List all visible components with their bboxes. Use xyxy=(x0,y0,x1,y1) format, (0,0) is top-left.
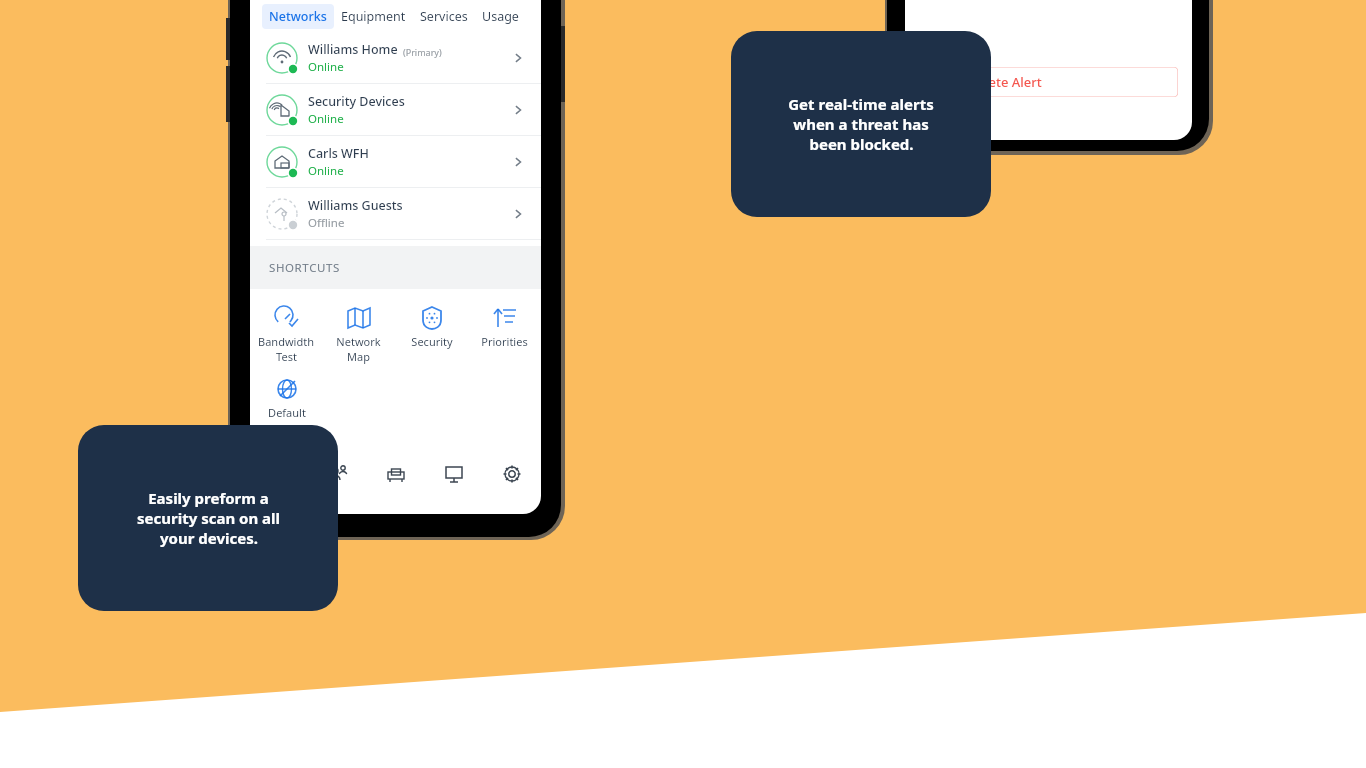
button[interactable]: Network xyxy=(322,303,395,366)
button[interactable]: Services xyxy=(413,4,475,29)
button[interactable]: Easily preform a xyxy=(78,425,338,611)
staticText: (Primary) xyxy=(403,46,442,58)
staticText: Security xyxy=(411,334,453,349)
staticText: Networks xyxy=(269,8,327,25)
staticText: been blocked. xyxy=(809,134,914,154)
staticText: Network xyxy=(336,334,381,349)
button[interactable]: Carls WFH xyxy=(250,136,541,187)
button[interactable]: Settings xyxy=(483,452,541,496)
staticText: Online xyxy=(308,163,344,179)
staticText: Williams Guests xyxy=(308,197,403,214)
button[interactable]: Networks xyxy=(262,4,334,29)
staticText: Williams Home xyxy=(308,41,398,58)
button[interactable]: Security xyxy=(395,303,468,351)
button[interactable]: Places xyxy=(367,452,425,496)
staticText: your devices. xyxy=(160,528,258,548)
staticText: when a threat has xyxy=(793,114,929,134)
button[interactable]: People xyxy=(309,452,367,496)
staticText: Online xyxy=(308,111,344,127)
staticText: Equipment xyxy=(341,8,406,25)
staticText: Get real-time alerts xyxy=(788,94,934,114)
button[interactable]: Get real-time alerts xyxy=(731,31,991,217)
staticText: Bandwidth xyxy=(258,334,314,349)
button[interactable]: Default xyxy=(250,374,323,422)
staticText: security scan on all xyxy=(137,508,280,528)
staticText: Test xyxy=(276,349,297,364)
staticText: Default xyxy=(268,405,306,420)
button[interactable]: Williams Guests xyxy=(250,188,541,239)
staticText: Online xyxy=(308,59,344,75)
button[interactable]: Bandwidth xyxy=(250,303,322,366)
staticText: Services xyxy=(420,8,468,25)
staticText: Offline xyxy=(308,215,345,231)
button[interactable]: Williams Home xyxy=(250,32,541,83)
staticText: Map xyxy=(347,349,370,364)
button[interactable]: Equipment xyxy=(334,4,413,29)
button[interactable]: Priorities xyxy=(468,303,541,351)
staticText: Security Devices xyxy=(308,93,405,110)
staticText: Delete Alert xyxy=(968,73,1042,91)
staticText: Usage xyxy=(482,8,519,25)
staticText: Priorities xyxy=(481,334,528,349)
button[interactable]: Delete Alert xyxy=(919,67,1178,97)
staticText: SHORTCUTS xyxy=(269,260,340,276)
button[interactable]: Usage xyxy=(475,4,526,29)
staticText: Carls WFH xyxy=(308,145,369,162)
staticText: Easily preform a xyxy=(148,488,269,508)
button[interactable]: Devices xyxy=(425,452,483,496)
button[interactable]: Security Devices xyxy=(250,84,541,135)
